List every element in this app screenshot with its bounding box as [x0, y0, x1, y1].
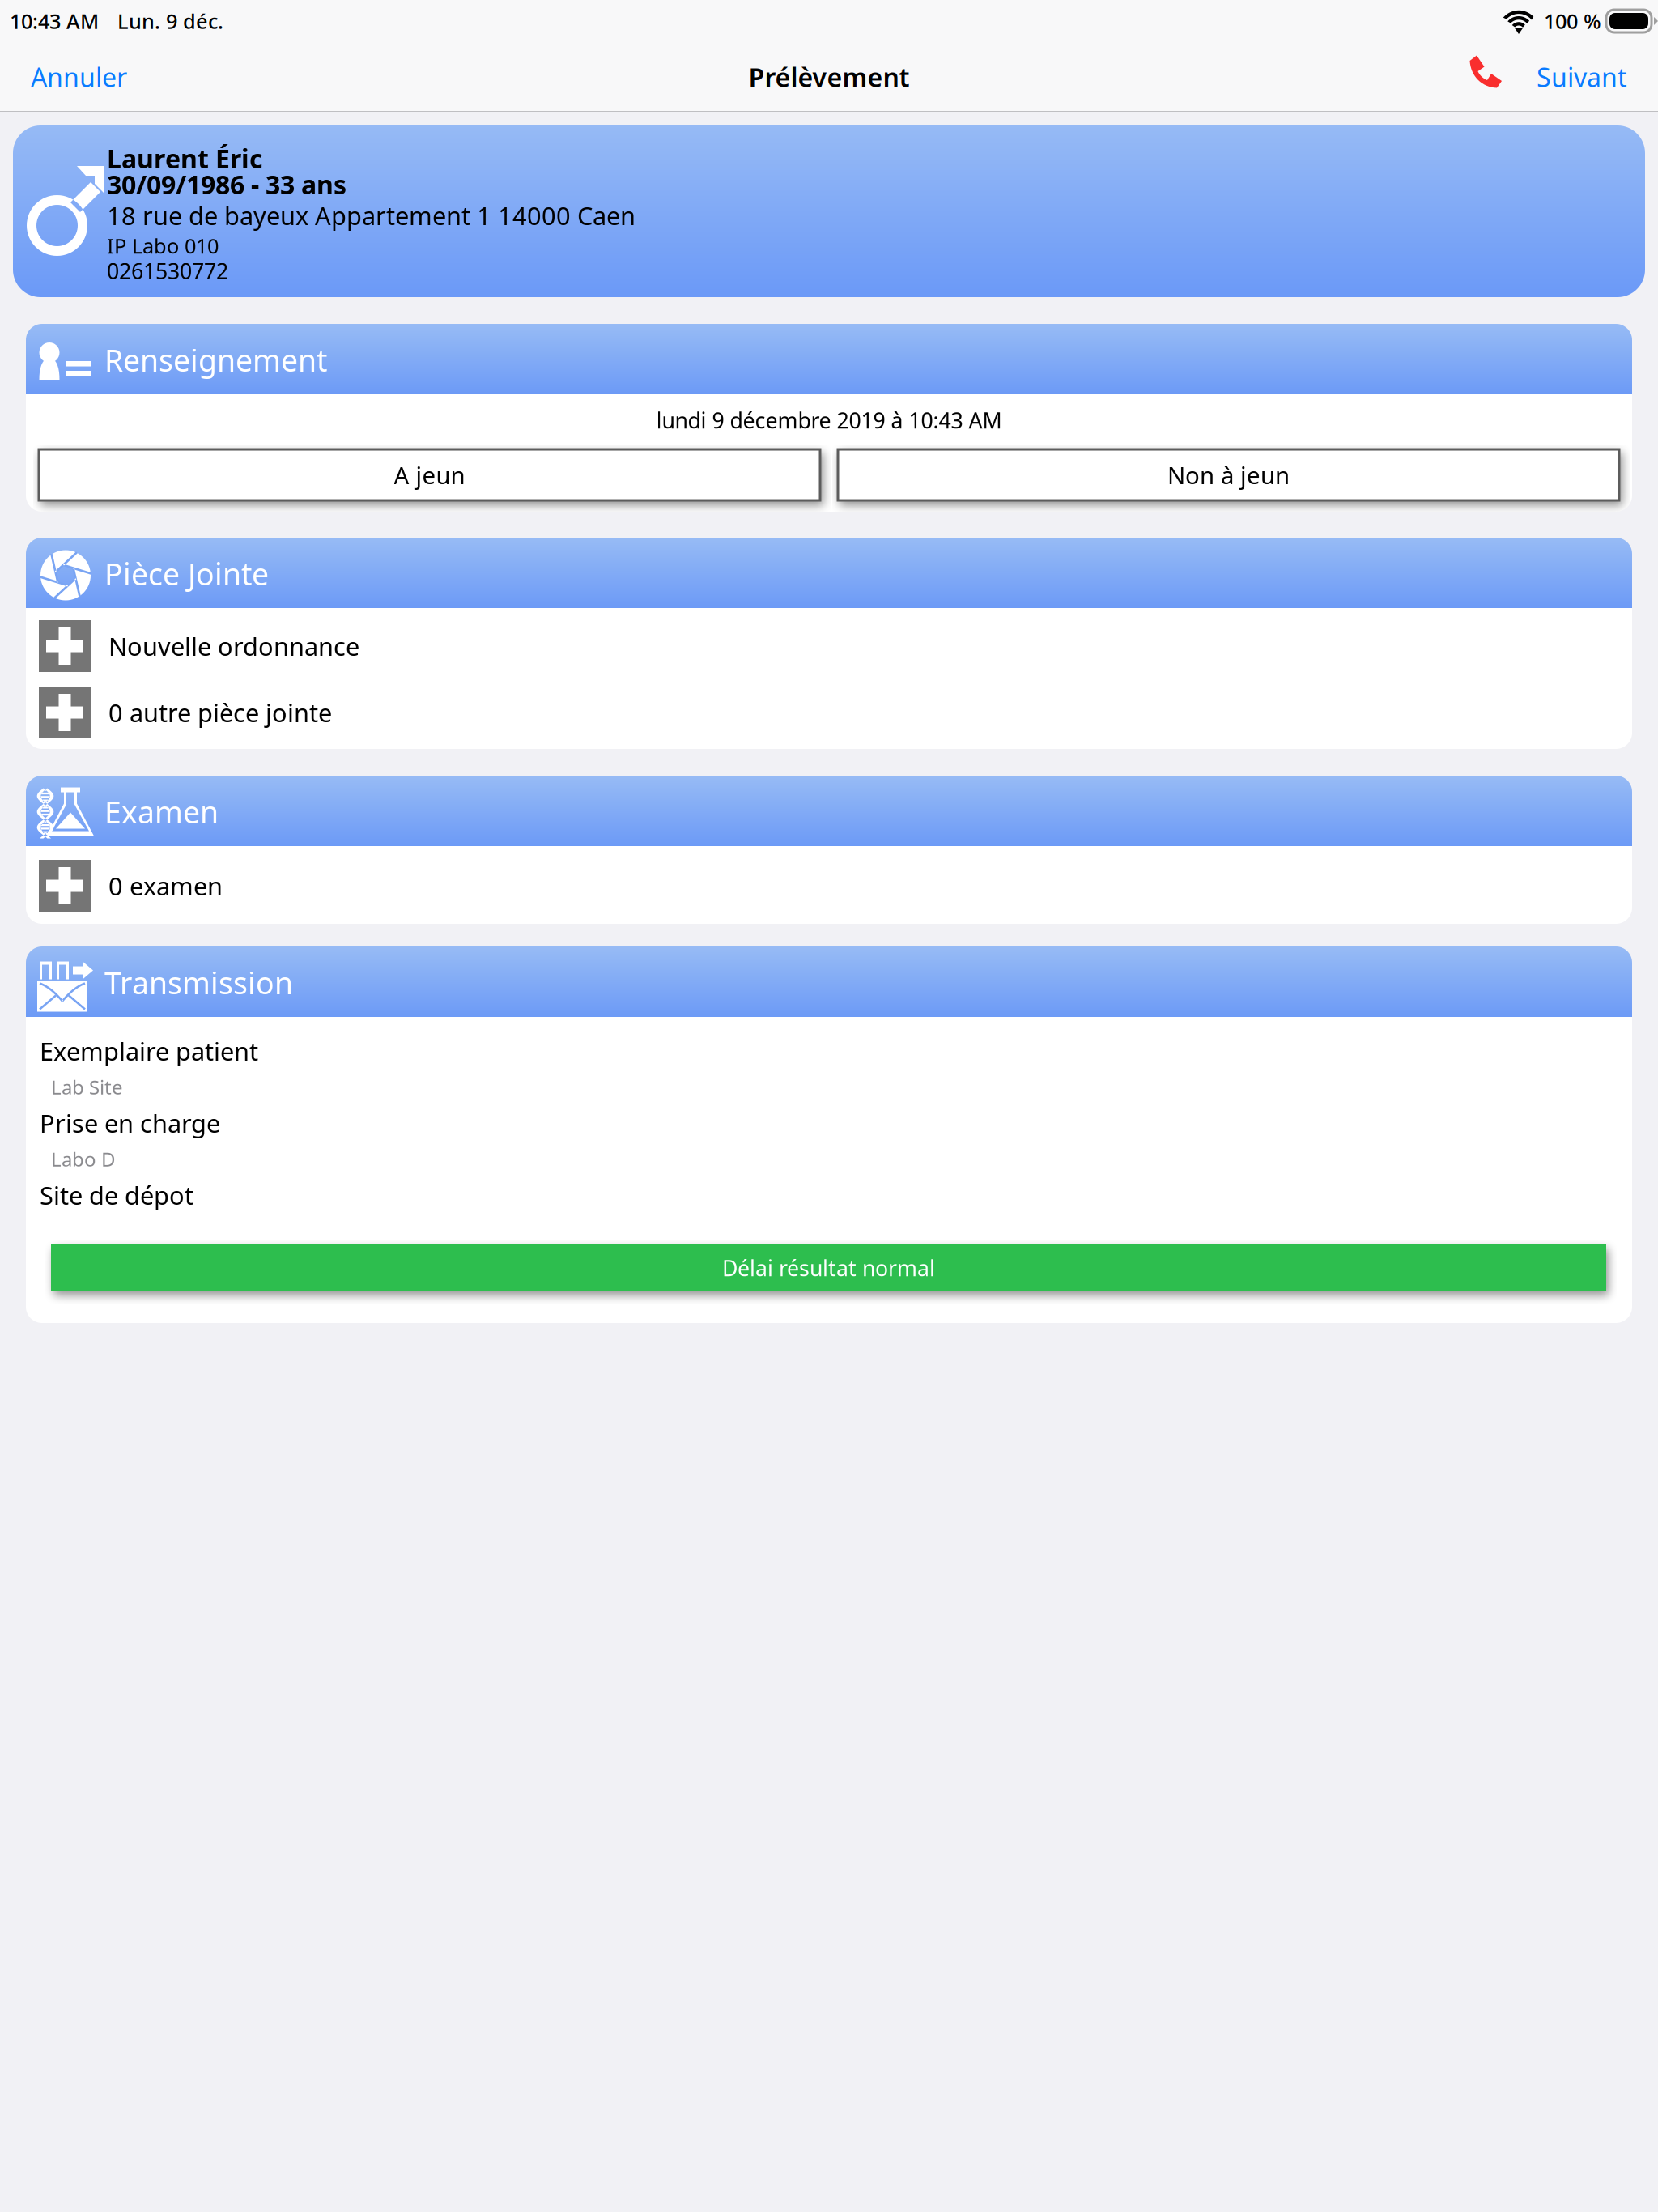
- staticText: Annuler: [31, 60, 127, 94]
- button[interactable]: 0 autre pièce jointe: [26, 687, 1632, 738]
- staticText: Pièce Jointe: [104, 554, 269, 594]
- staticText: Renseignement: [104, 340, 327, 380]
- staticText: Lab Site: [51, 1074, 123, 1100]
- button[interactable]: 0 examen: [26, 860, 1632, 912]
- staticText: Prise en charge: [40, 1106, 220, 1139]
- staticText: 10:43 AM: [10, 7, 99, 35]
- staticText: Nouvelle ordonnance: [108, 630, 359, 663]
- button[interactable]: Délai résultat normal: [51, 1244, 1606, 1291]
- button[interactable]: A jeun: [39, 449, 820, 500]
- staticText: 100 %: [1544, 7, 1601, 35]
- staticText: 0 examen: [108, 869, 223, 902]
- staticText: 18 rue de bayeux Appartement 1 14000 Cae…: [107, 199, 636, 232]
- staticText: Suivant: [1537, 60, 1627, 94]
- staticText: lundi 9 décembre 2019 à 10:43 AM: [656, 406, 1002, 435]
- staticText: Exemplaire patient: [40, 1034, 258, 1067]
- button[interactable]: Non à jeun: [838, 449, 1619, 500]
- button[interactable]: Annuler: [13, 42, 145, 112]
- staticText: Non à jeun: [1167, 459, 1290, 491]
- staticText: A jeun: [394, 459, 465, 491]
- staticText: Transmission: [104, 962, 293, 1003]
- staticText: Examen: [104, 792, 219, 832]
- button[interactable]: Suivant: [1519, 42, 1645, 112]
- staticText: 30/09/1986 - 33 ans: [107, 167, 346, 201]
- staticText: 0261530772: [107, 257, 228, 285]
- button[interactable]: Nouvelle ordonnance: [26, 620, 1632, 672]
- staticText: Prélèvement: [748, 60, 910, 94]
- staticText: 0 autre pièce jointe: [108, 696, 332, 729]
- staticText: Site de dépot: [40, 1179, 193, 1211]
- staticText: Lun. 9 déc.: [117, 7, 223, 35]
- staticText: Laurent Éric: [107, 141, 263, 176]
- staticText: IP Labo 010: [107, 232, 219, 259]
- staticText: Délai résultat normal: [722, 1254, 935, 1282]
- staticText: Labo D: [51, 1146, 116, 1172]
- button[interactable]: Appeler: [1455, 42, 1516, 112]
